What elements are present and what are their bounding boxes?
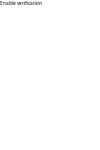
staticText: Enable verification [0, 0, 42, 6]
